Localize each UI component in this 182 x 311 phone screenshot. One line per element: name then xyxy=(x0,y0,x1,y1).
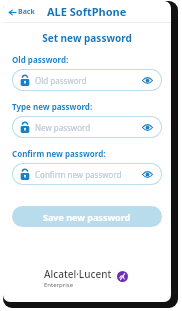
button[interactable]: Back xyxy=(3,4,41,20)
button[interactable]: Show password xyxy=(140,73,154,87)
staticText: Alcatel·Lucent xyxy=(44,267,112,281)
staticText: Old password xyxy=(35,75,140,86)
staticText: Type new password: xyxy=(12,101,93,112)
button[interactable]: Show password xyxy=(140,120,154,134)
staticText: Old password: xyxy=(12,54,69,65)
staticText: ALE SoftPhone xyxy=(47,4,127,19)
staticText: Set new password xyxy=(3,31,171,45)
staticText: New password xyxy=(35,122,140,133)
staticText: Enterprise xyxy=(44,281,74,289)
button[interactable]: Old password xyxy=(13,70,161,90)
staticText: Save new password xyxy=(43,211,131,223)
button[interactable]: Confirm new password xyxy=(13,164,161,184)
button[interactable]: New password xyxy=(13,117,161,137)
button[interactable]: Save new password xyxy=(12,206,162,227)
staticText: Confirm new password: xyxy=(12,148,106,159)
staticText: Confirm new password xyxy=(35,169,140,180)
button[interactable]: Show password xyxy=(140,167,154,181)
staticText: Back xyxy=(18,7,35,17)
